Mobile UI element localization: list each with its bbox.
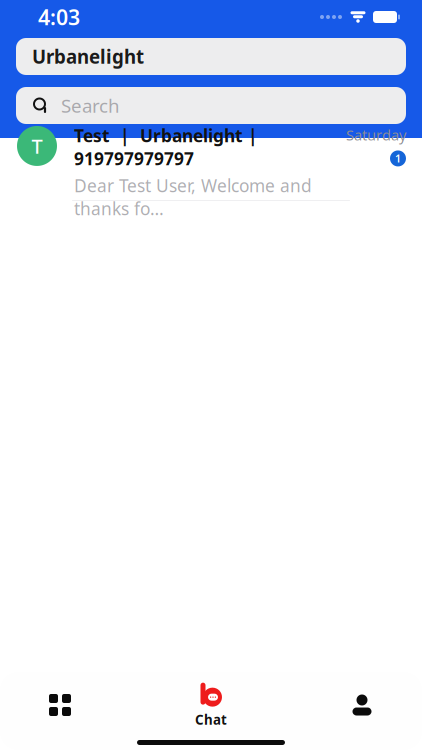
staticText: Dear Test User, Welcome and thanks fo…	[74, 174, 312, 220]
staticText: Test | Urbanelight | 919797979797	[74, 124, 263, 170]
staticText: Chat	[195, 711, 227, 728]
staticText: 4:03	[38, 3, 80, 31]
button[interactable]: Profile	[312, 678, 412, 732]
button[interactable]: Search	[16, 87, 406, 124]
staticText: Saturday	[346, 125, 406, 144]
button[interactable]: Urbanelight	[16, 38, 406, 75]
staticText: T	[31, 133, 42, 159]
staticText: Urbanelight	[32, 44, 144, 69]
button[interactable]: Chat	[161, 678, 261, 732]
button[interactable]: T	[0, 138, 422, 201]
button[interactable]: Apps	[10, 678, 110, 732]
staticText: Search	[61, 93, 120, 118]
staticText: 1	[395, 151, 401, 166]
